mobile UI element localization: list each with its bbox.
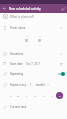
staticText: T [43, 94, 45, 97]
staticText: Timer value [10, 26, 26, 30]
button[interactable]: M [15, 92, 22, 99]
staticText: Repeating [10, 72, 24, 76]
button[interactable]: S [56, 92, 63, 99]
button[interactable]: T [40, 92, 47, 99]
staticText: 01 [39, 44, 42, 47]
staticText: Dec 7, 2017 [26, 62, 41, 66]
button[interactable]: Back [0, 4, 9, 13]
staticText: S [10, 94, 12, 97]
button[interactable]: Timer value [0, 23, 67, 32]
button[interactable]: Repeat every: [0, 80, 67, 89]
button[interactable]: S [7, 92, 14, 99]
button[interactable]: Repeating toggle [57, 71, 65, 77]
button[interactable]: Repeating [0, 69, 67, 78]
staticText: week(s) [36, 83, 46, 87]
staticText: 00 [25, 39, 29, 43]
button[interactable]: F [48, 92, 55, 99]
button[interactable]: Save [58, 4, 67, 13]
staticText: What is planned? [10, 15, 34, 19]
staticText: T [26, 94, 28, 97]
staticText: Start date [10, 62, 23, 66]
staticText: Repeat every: [10, 83, 27, 87]
button[interactable]: Start date [0, 59, 67, 68]
staticText: 1 [30, 83, 32, 87]
staticText: S [59, 94, 61, 97]
staticText: Sometime [10, 52, 24, 56]
staticText: 23 [39, 35, 42, 38]
button[interactable]: Sometime [0, 49, 67, 58]
button[interactable]: What is planned? [0, 12, 67, 21]
staticText: Current task [10, 105, 27, 109]
button[interactable]: Current task [0, 102, 67, 111]
button[interactable]: T [23, 92, 30, 99]
staticText: 01 [26, 44, 29, 47]
staticText: 00 [38, 39, 42, 43]
button[interactable]: Pick date [59, 62, 63, 66]
staticText: F [51, 94, 53, 97]
button[interactable]: W [32, 92, 39, 99]
staticText: New scheduled activity [9, 7, 41, 11]
staticText: W [34, 94, 37, 97]
staticText: M [17, 94, 20, 97]
staticText: 23 [26, 35, 29, 38]
